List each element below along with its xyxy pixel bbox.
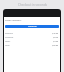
staticText: $5.00 (53, 36, 59, 39)
staticText: Total (5, 44, 10, 47)
staticText: $50.80 (52, 44, 59, 47)
button[interactable]: Taxes (5, 39, 59, 43)
staticText: $3.80 (53, 40, 59, 43)
button[interactable]: Total (5, 43, 59, 47)
staticText: Subtotal (5, 32, 13, 35)
staticText: $42.00 (52, 32, 59, 35)
staticText: Checkout in seconds (18, 3, 47, 7)
staticText: Order summary (5, 19, 22, 22)
staticText: Taxes (5, 40, 11, 43)
staticText: Continue (28, 25, 37, 28)
button[interactable]: Shipping (5, 35, 59, 39)
staticText: Shipping (5, 36, 14, 39)
button[interactable]: Continue (5, 25, 59, 28)
button[interactable]: Subtotal (5, 31, 59, 35)
